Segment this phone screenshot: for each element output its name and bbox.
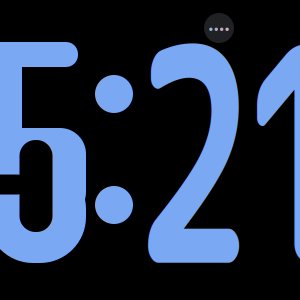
button[interactable]: More options xyxy=(204,13,234,43)
staticText: 1 xyxy=(203,0,300,300)
staticText: 2 xyxy=(98,0,287,300)
